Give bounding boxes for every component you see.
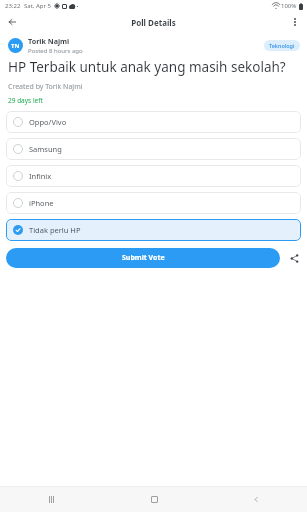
button[interactable]: Oppo/Vivo xyxy=(6,111,301,133)
button[interactable]: Samsung xyxy=(6,138,301,160)
staticText: 29 days left xyxy=(8,96,43,105)
button[interactable]: Submit Vote xyxy=(6,248,280,268)
button[interactable]: Teknologi xyxy=(264,40,300,51)
button[interactable]: More options xyxy=(287,14,303,30)
staticText: Teknologi xyxy=(269,42,295,49)
button[interactable]: iPhone xyxy=(6,192,301,214)
staticText: Oppo/Vivo xyxy=(29,117,67,127)
button[interactable]: Infinix xyxy=(6,165,301,187)
staticText: 100% xyxy=(281,2,297,10)
button[interactable]: Share xyxy=(285,249,303,267)
staticText: Posted 8 hours ago xyxy=(28,47,83,55)
staticText: Infinix xyxy=(29,171,52,181)
staticText: Poll Details xyxy=(131,17,176,28)
button[interactable]: Back xyxy=(4,14,20,30)
button[interactable]: Home xyxy=(103,487,205,512)
staticText: Samsung xyxy=(29,144,62,154)
staticText: Created by Torik Najmi xyxy=(8,82,83,92)
staticText: TN xyxy=(11,42,20,50)
staticText: Sat, Apr 5 xyxy=(24,2,51,10)
staticText: 23:22 xyxy=(5,2,21,10)
staticText: HP Terbaik untuk anak yang masih sekolah… xyxy=(8,58,286,76)
staticText: iPhone xyxy=(29,198,54,208)
staticText: Submit Vote xyxy=(122,253,165,263)
button[interactable]: Tidak perlu HP xyxy=(6,219,301,241)
staticText: Torik Najmi xyxy=(28,36,70,46)
staticText: Tidak perlu HP xyxy=(29,225,81,235)
button[interactable]: Recent apps xyxy=(0,487,103,512)
